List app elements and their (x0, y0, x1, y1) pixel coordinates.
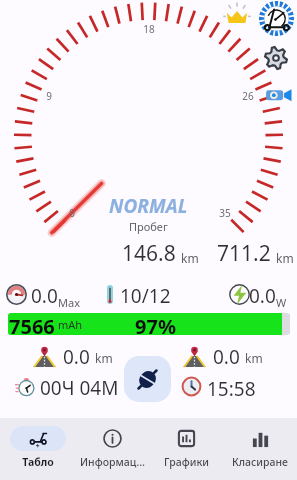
staticText: 7566 (9, 313, 55, 335)
staticText: 15:58 (207, 376, 256, 396)
staticText: Класиране (232, 455, 288, 469)
staticText: NORMAL (109, 193, 188, 219)
staticText: W (276, 295, 287, 310)
staticText: km (95, 350, 113, 366)
staticText: 35 (219, 206, 231, 220)
staticText: 26 (242, 89, 254, 103)
staticText: 97% (135, 313, 176, 335)
staticText: 0.0 (213, 344, 240, 367)
button[interactable]: Record video (263, 84, 294, 106)
staticText: 711.2 (217, 239, 271, 268)
staticText: 10/12 (120, 283, 171, 309)
button[interactable]: Класиране (223, 418, 297, 480)
button[interactable]: Connect (124, 356, 171, 402)
staticText: 0 (69, 206, 75, 220)
staticText: Информац… (80, 455, 145, 469)
button[interactable]: Информац… (75, 418, 149, 480)
staticText: km (181, 250, 199, 266)
staticText: km (245, 350, 263, 366)
staticText: 0.0 (249, 283, 276, 309)
button[interactable]: Графики (149, 418, 223, 480)
staticText: Графики (164, 455, 209, 469)
staticText: 18 (143, 22, 155, 36)
staticText: 9 (46, 89, 52, 103)
button[interactable]: Табло (0, 418, 75, 480)
staticText: Пробег (129, 219, 168, 234)
button[interactable]: Settings (265, 47, 287, 69)
button[interactable]: App logo (259, 1, 294, 36)
staticText: Max (58, 295, 80, 310)
staticText: mAh (58, 317, 83, 332)
staticText: Табло (22, 455, 54, 469)
staticText: 146.8 (122, 239, 176, 268)
staticText: km (276, 250, 294, 266)
staticText: 0.0 (63, 344, 90, 367)
staticText: 00Ч 04М (40, 375, 119, 395)
staticText: 0.0 (31, 283, 58, 309)
button[interactable]: Premium (222, 2, 252, 32)
